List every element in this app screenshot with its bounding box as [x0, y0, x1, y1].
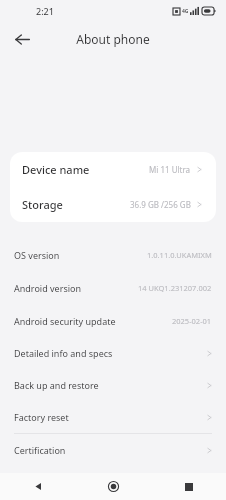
staticText: 4G — [182, 8, 189, 15]
button[interactable]: Back up and restore — [0, 369, 226, 401]
button[interactable]: Device name — [10, 152, 216, 187]
staticText: 1.0.11.0.UKAMIXM — [147, 250, 212, 260]
button[interactable]: Back — [8, 25, 36, 53]
staticText: Factory reset — [14, 411, 69, 423]
staticText: 14 UKQ1.231207.002 — [138, 283, 212, 293]
staticText: Android version — [14, 282, 82, 294]
staticText: 36.9 GB /256 GB — [130, 199, 191, 210]
button[interactable]: Android version — [0, 271, 226, 304]
button[interactable]: Recent apps — [151, 473, 226, 500]
button[interactable]: Certification — [0, 434, 226, 466]
staticText: Android security update — [14, 315, 116, 327]
button[interactable]: Storage — [10, 187, 216, 222]
staticText: Detailed info and specs — [14, 347, 113, 359]
button[interactable]: Home — [76, 473, 151, 500]
button[interactable]: Android security update — [0, 304, 226, 337]
button[interactable]: Factory reset — [0, 401, 226, 433]
staticText: About phone — [76, 31, 150, 47]
staticText: Back up and restore — [14, 379, 99, 391]
staticText: 2:21 — [36, 5, 54, 17]
button[interactable]: OS version — [0, 238, 226, 271]
staticText: OS version — [14, 249, 60, 261]
staticText: 2025-02-01 — [172, 316, 212, 326]
staticText: Certification — [14, 444, 66, 456]
staticText: Device name — [22, 162, 90, 177]
staticText: Mi 11 Ultra — [149, 164, 191, 175]
button[interactable]: Detailed info and specs — [0, 337, 226, 369]
staticText: Storage — [22, 197, 63, 212]
button[interactable]: Back — [0, 473, 76, 500]
